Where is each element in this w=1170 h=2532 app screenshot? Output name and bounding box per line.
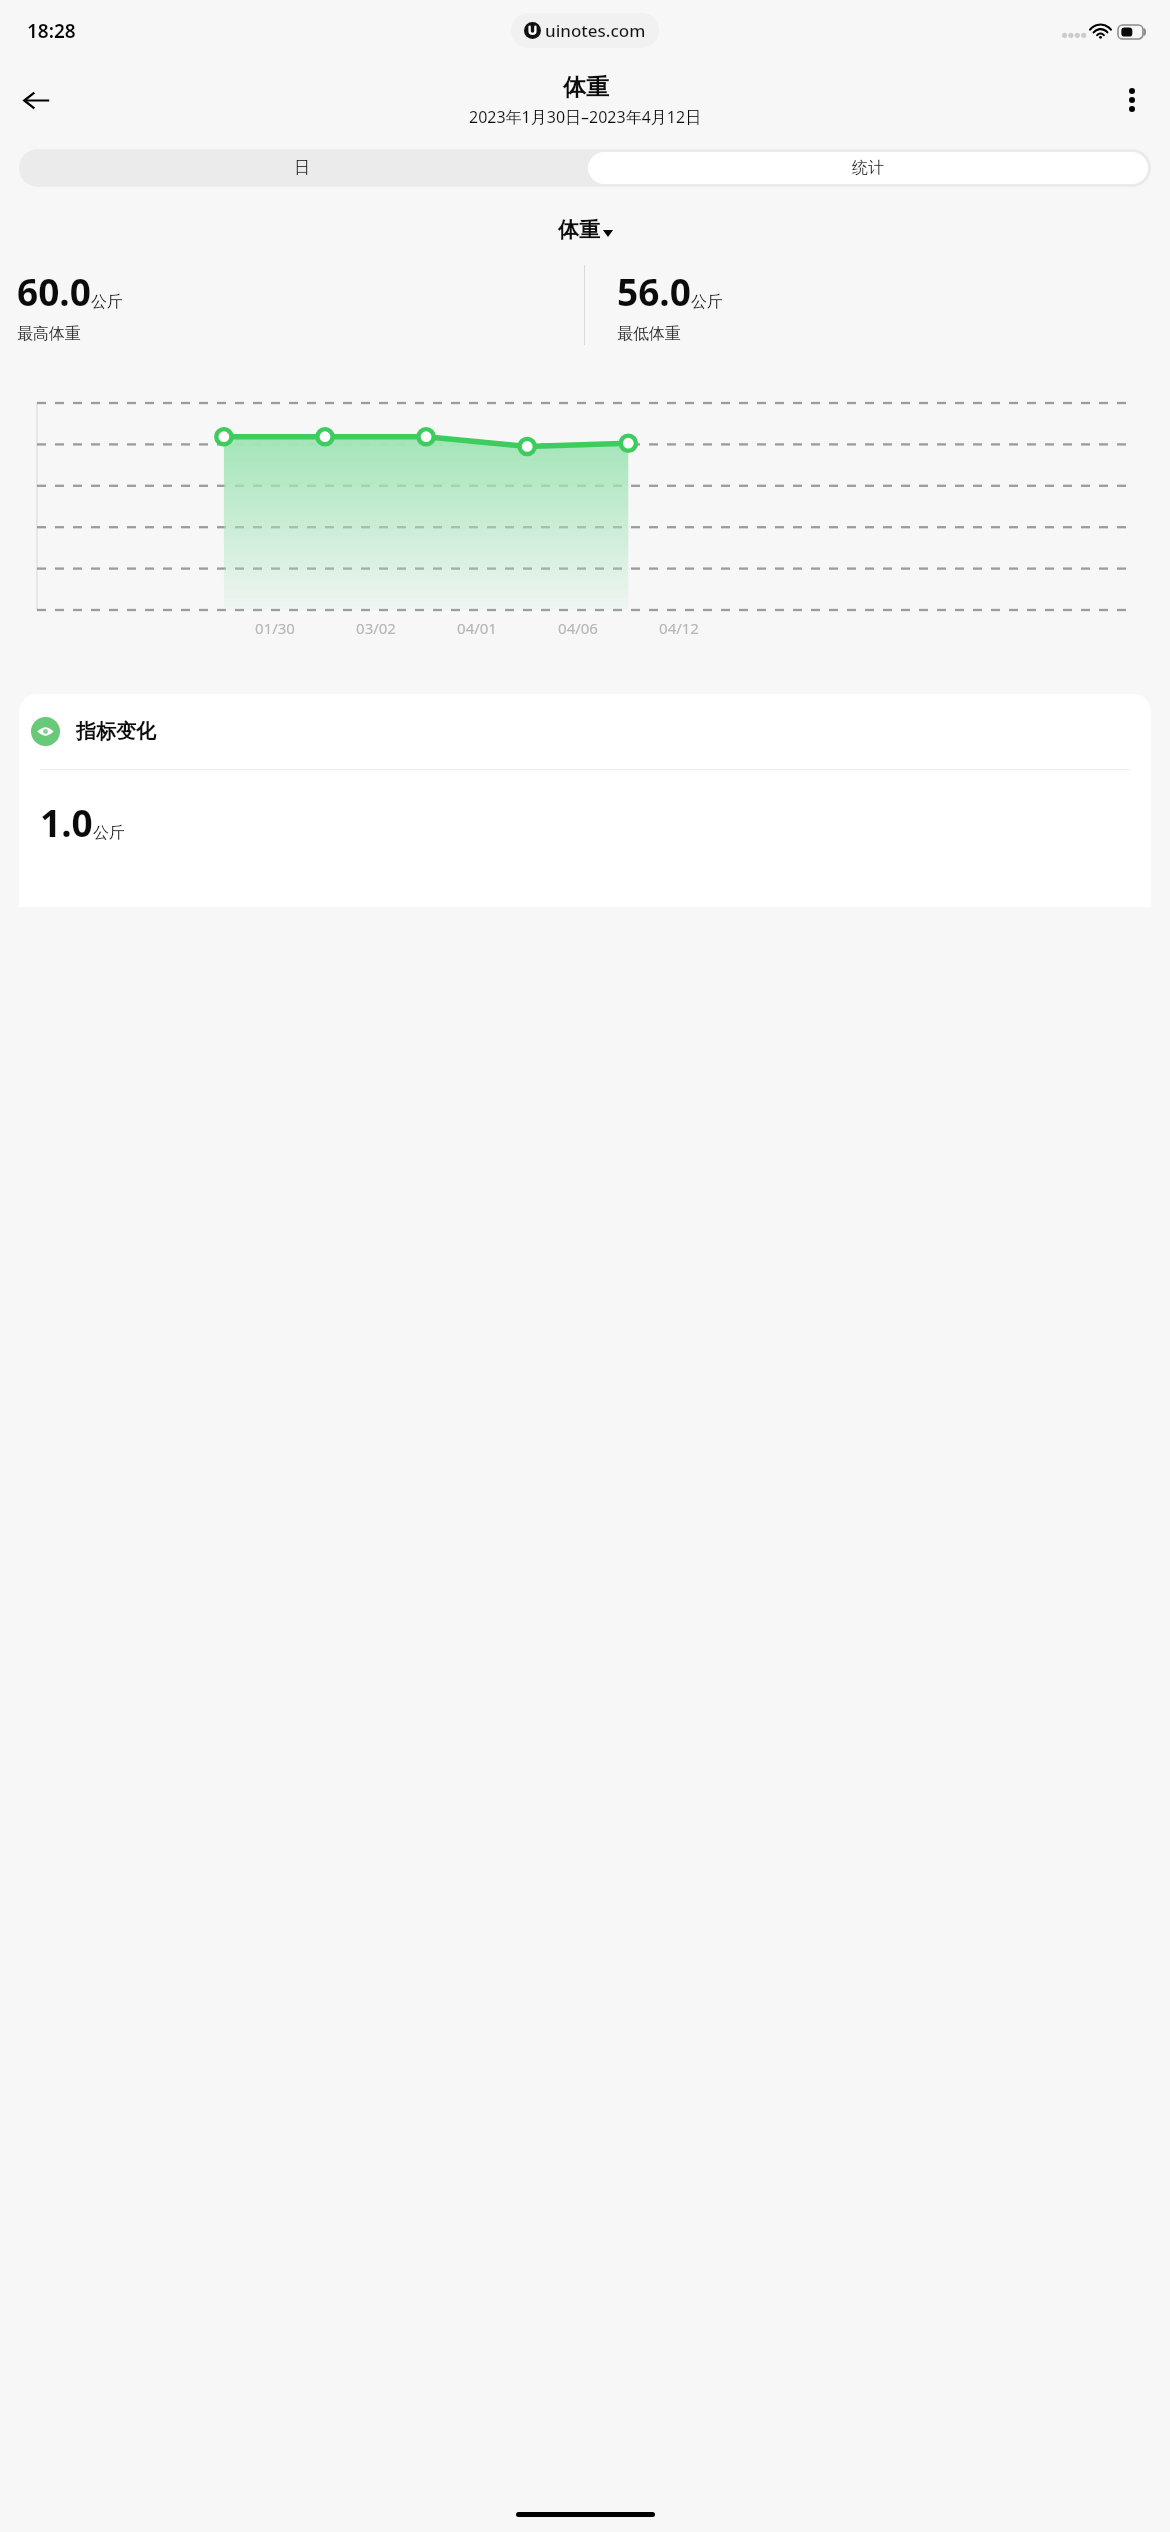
button[interactable]: 日	[19, 149, 585, 187]
staticText: 指标变化	[76, 719, 156, 744]
staticText: 体重	[558, 217, 600, 243]
button[interactable]: Metric change	[19, 694, 1151, 907]
staticText: 公斤	[691, 292, 723, 312]
staticText: 56.0	[617, 266, 691, 316]
button[interactable]: 体重	[550, 214, 621, 246]
staticText: uinotes.com	[545, 19, 646, 42]
button[interactable]: Back	[8, 72, 64, 128]
button[interactable]: More options	[1106, 74, 1158, 126]
staticText: 04/06	[558, 618, 598, 638]
other: Metric change	[31, 717, 60, 746]
staticText: 最低体重	[617, 324, 681, 344]
staticText: 日	[294, 158, 310, 178]
staticText: 04/01	[457, 618, 497, 638]
staticText: 统计	[852, 158, 884, 178]
staticText: 60.0	[17, 266, 91, 316]
staticText: 最高体重	[17, 324, 81, 344]
staticText: 18:28	[27, 18, 76, 44]
staticText: 03/02	[356, 618, 396, 638]
staticText: 1.0	[40, 797, 93, 847]
staticText: 2023年1月30日–2023年4月12日	[469, 106, 702, 128]
staticText: 公斤	[91, 292, 123, 312]
staticText: 01/30	[255, 618, 295, 638]
staticText: 体重	[563, 73, 609, 102]
staticText: 04/12	[659, 618, 699, 638]
button[interactable]: 统计	[588, 152, 1148, 184]
staticText: 公斤	[93, 823, 125, 843]
